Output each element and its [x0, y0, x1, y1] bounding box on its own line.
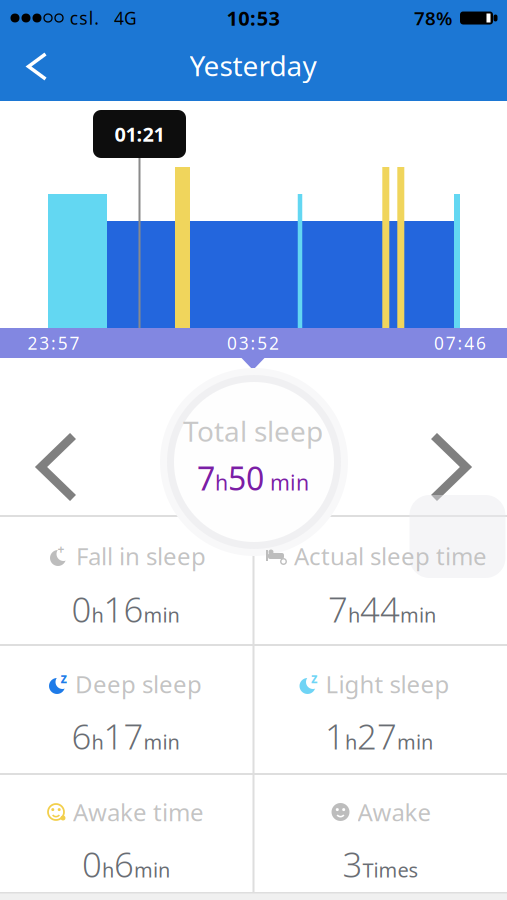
staticText: 6h17min: [71, 713, 179, 759]
staticText: 7h50 min: [197, 457, 309, 499]
staticText: Actual sleep time: [294, 540, 487, 572]
button[interactable]: [420, 422, 480, 512]
staticText: +: [57, 541, 64, 557]
staticText: 3Times: [342, 841, 418, 887]
staticText: 7h44min: [328, 586, 436, 632]
staticText: Light sleep: [325, 668, 449, 700]
staticText: z: [60, 669, 67, 687]
staticText: 03:52: [227, 331, 279, 354]
staticText: 23:57: [27, 331, 80, 354]
staticText: Fall in sleep: [76, 540, 206, 572]
button[interactable]: [27, 422, 87, 512]
staticText: z: [311, 669, 318, 687]
staticText: 0h16min: [71, 586, 179, 632]
staticText: Yesterday: [189, 47, 316, 84]
staticText: Total sleep: [183, 412, 323, 450]
staticText: csl.: [70, 6, 99, 29]
staticText: 10:53: [226, 5, 280, 31]
staticText: 4G: [114, 6, 137, 29]
staticText: 01:21: [114, 121, 164, 147]
staticText: Deep sleep: [75, 668, 202, 700]
staticText: 78%: [414, 6, 452, 30]
staticText: Awake time: [73, 796, 204, 828]
staticText: 1h27min: [325, 713, 433, 759]
staticText: 0h6min: [82, 841, 170, 887]
button[interactable]: [15, 40, 59, 92]
staticText: Awake: [357, 796, 431, 828]
staticText: 07:46: [434, 331, 486, 354]
